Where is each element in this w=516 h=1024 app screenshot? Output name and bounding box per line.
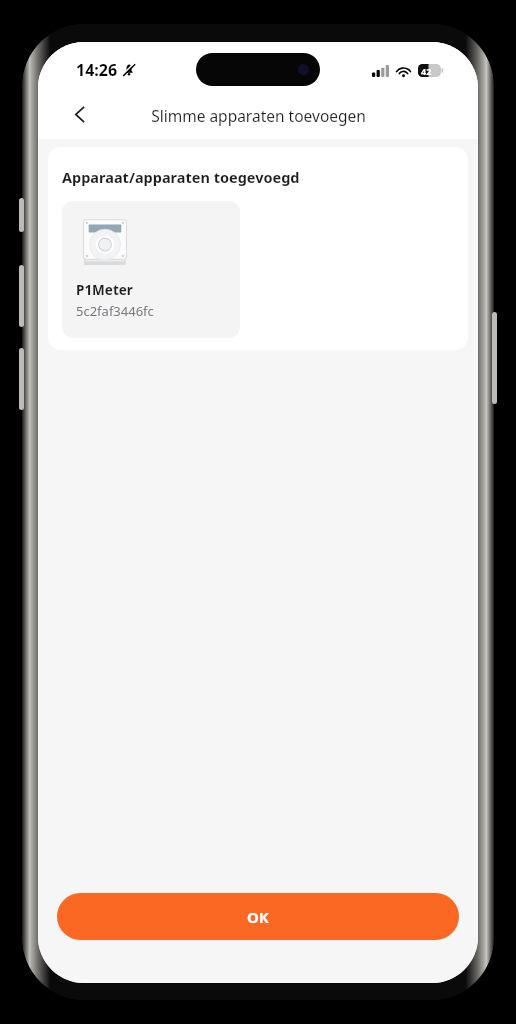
staticText: 5c2faf3446fc (76, 302, 154, 320)
staticText: OK (247, 907, 269, 927)
staticText: P1Meter (76, 281, 133, 299)
staticText: Apparaat/apparaten toegevoegd (62, 167, 300, 187)
staticText: 14:26 (76, 59, 118, 81)
button[interactable]: OK (57, 893, 459, 940)
staticText: 42 (421, 65, 432, 77)
button[interactable]: P1Meter (62, 201, 240, 338)
button[interactable]: Back (60, 94, 100, 134)
staticText: Slimme apparaten toevoegen (151, 105, 366, 126)
